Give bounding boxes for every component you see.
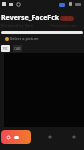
staticText: PIC [3, 47, 8, 51]
button[interactable]: PIC [1, 45, 10, 52]
button[interactable]: CAM [13, 45, 22, 52]
staticText: Transform me [50, 23, 77, 28]
staticText: v1.2 [64, 16, 71, 21]
button[interactable]: Share [46, 133, 54, 141]
other: Record [6, 135, 11, 140]
staticText: Select a picture [10, 36, 39, 41]
button[interactable]: Record [1, 130, 31, 144]
button[interactable]: v1.2 [60, 16, 74, 21]
staticText: CAM [14, 47, 21, 51]
staticText: Reversed by Sam [1, 23, 33, 28]
staticText: Reverse_FaceFck [1, 13, 60, 23]
button[interactable]: Settings [70, 133, 78, 141]
